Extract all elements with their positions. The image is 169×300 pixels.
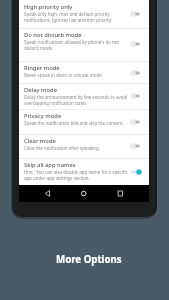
- staticText: Delay mode: [24, 86, 57, 94]
- staticText: Clear mode: [24, 137, 56, 145]
- button[interactable]: Delay mode: [19, 83, 149, 109]
- button[interactable]: Toggle: [129, 116, 141, 128]
- staticText: Speak only high, max and default priorit…: [24, 11, 129, 23]
- staticText: More Options: [56, 253, 122, 266]
- staticText: Never speak in silent or vibrate mode: [24, 72, 102, 78]
- button[interactable]: Toggle: [129, 67, 141, 79]
- staticText: High priority only: [24, 3, 73, 11]
- button[interactable]: Skip all app names: [19, 158, 149, 186]
- staticText: Clear the notification after speaking.: [24, 145, 100, 151]
- button[interactable]: Toggle: [129, 8, 141, 20]
- staticText: Delay the announcement by few seconds to…: [24, 94, 129, 106]
- staticText: Ringer mode: [24, 64, 60, 72]
- button[interactable]: High priority only: [19, 0, 149, 28]
- button[interactable]: Toggle: [129, 140, 141, 152]
- button[interactable]: Privacy mode: [19, 109, 149, 134]
- staticText: Speak notifications allowed by phone's d…: [24, 39, 129, 51]
- button[interactable]: Clear mode: [19, 134, 149, 158]
- button[interactable]: Ringer mode: [19, 61, 149, 84]
- staticText: Hint : You can also disable app name for…: [24, 169, 129, 181]
- staticText: Privacy mode: [24, 112, 62, 120]
- staticText: Skip all app names: [24, 161, 76, 169]
- button[interactable]: Toggle: [129, 38, 141, 50]
- button[interactable]: Toggle: [129, 166, 141, 178]
- staticText: Speak the notification title and skip th…: [24, 120, 123, 126]
- staticText: Do not disturb mode: [24, 31, 82, 39]
- button[interactable]: Toggle: [129, 90, 141, 102]
- button[interactable]: Do not disturb mode: [19, 28, 149, 60]
